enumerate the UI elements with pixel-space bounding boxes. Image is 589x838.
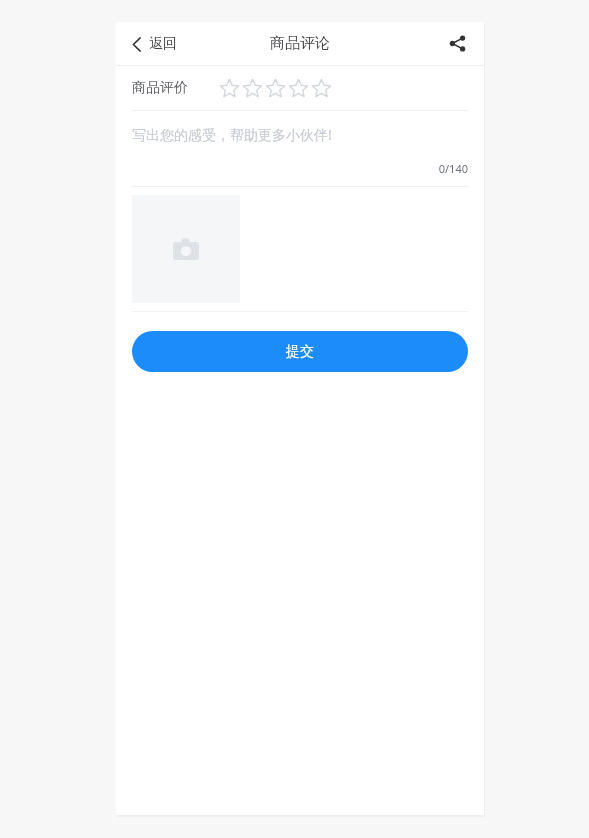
button[interactable]: 返回 (126, 29, 187, 59)
button[interactable]: 评分 4 星 (287, 76, 310, 100)
staticText: 商品评论 (270, 34, 330, 53)
button[interactable]: 写出您的感受，帮助更多小伙伴! (116, 111, 484, 186)
button[interactable]: 分享 (443, 29, 472, 58)
button[interactable]: 评分 2 星 (241, 76, 264, 100)
staticText: 提交 (286, 343, 314, 361)
staticText: 写出您的感受，帮助更多小伙伴! (132, 125, 332, 144)
button[interactable]: 评分 3 星 (264, 76, 287, 100)
staticText: 返回 (149, 35, 177, 53)
staticText: 0/140 (132, 161, 468, 176)
button[interactable]: 上传图片 (132, 195, 240, 303)
staticText: 商品评价 (132, 79, 188, 97)
button[interactable]: 提交 (132, 331, 468, 372)
button[interactable]: 评分 1 星 (218, 76, 241, 100)
button[interactable]: 评分 5 星 (310, 76, 333, 100)
